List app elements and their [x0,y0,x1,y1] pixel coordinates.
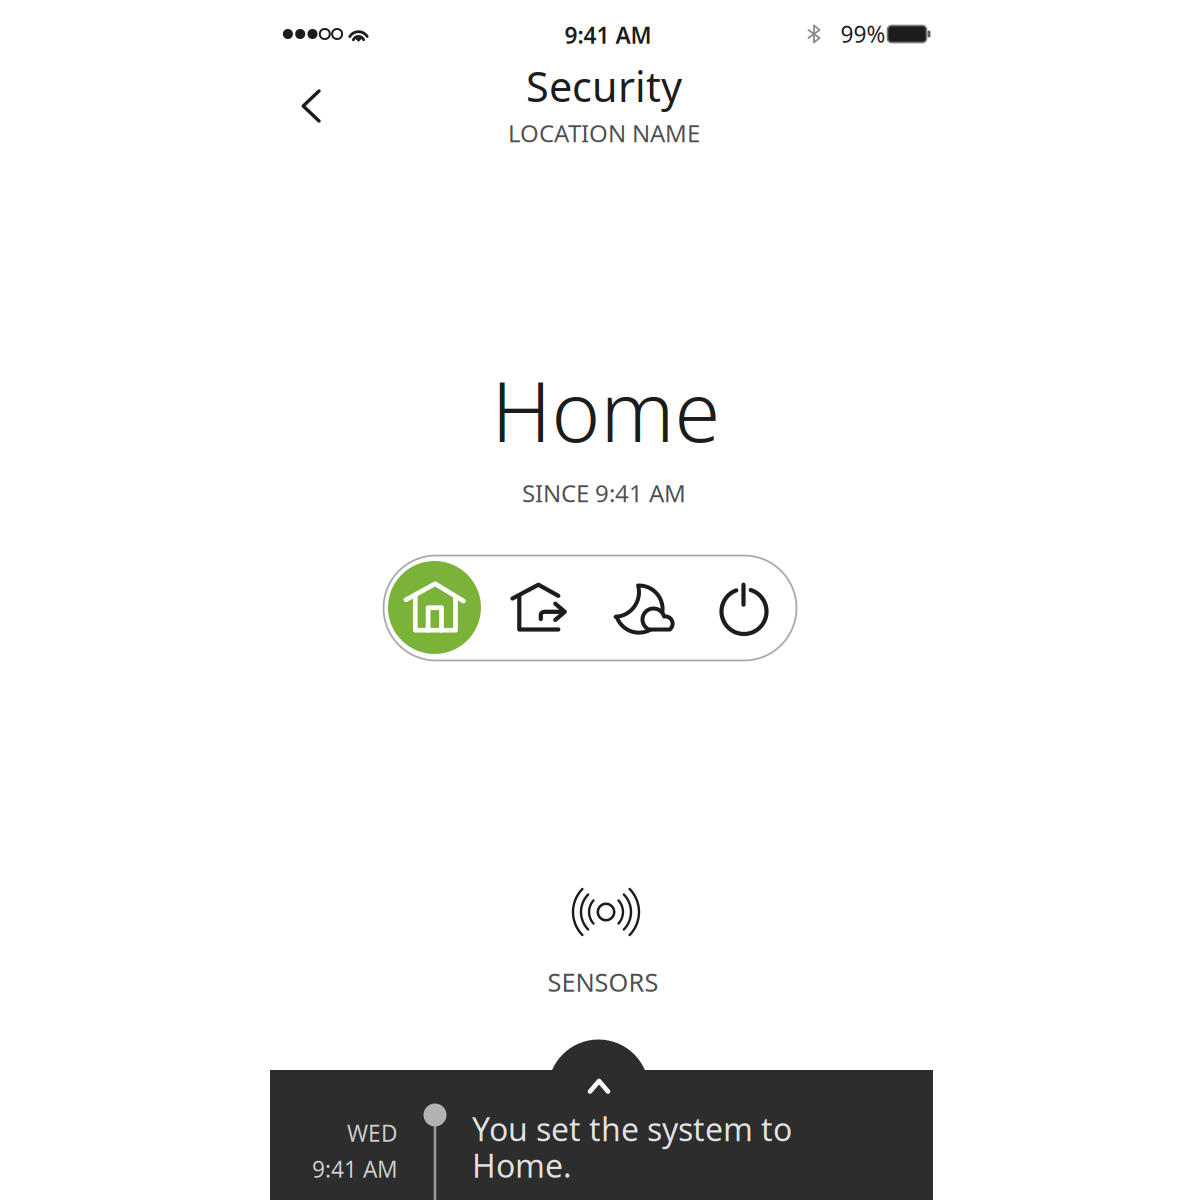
staticText: SENSORS [547,965,658,999]
staticText: 99% [840,19,885,49]
staticText: Home [491,355,720,465]
button[interactable]: Back [275,70,347,142]
button[interactable]: Home mode [383,555,486,660]
staticText: Home. [472,1144,572,1186]
staticText: SINCE 9:41 AM [522,477,686,509]
button[interactable]: Night mode [592,555,695,660]
button[interactable]: Away mode [487,555,590,660]
staticText: Security [526,59,682,113]
staticText: 9:41 AM [564,20,651,50]
button[interactable]: Off [692,558,795,663]
staticText: 9:41 AM [312,1154,398,1184]
staticText: WED [347,1118,398,1148]
staticText: You set the system to [472,1107,792,1150]
button[interactable]: Expand activity [568,1058,630,1113]
staticText: LOCATION NAME [508,117,700,149]
